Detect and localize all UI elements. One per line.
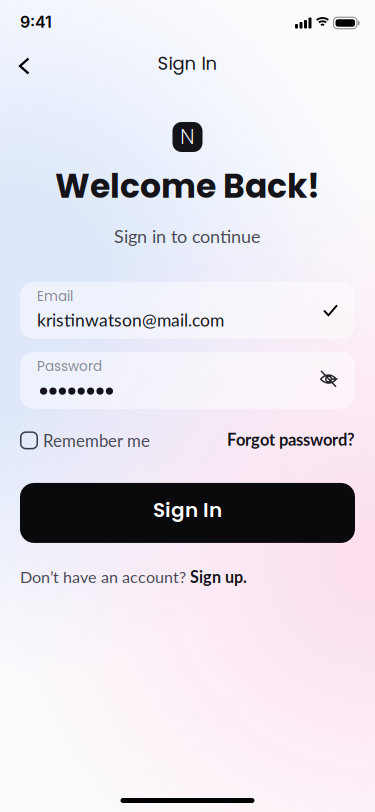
button[interactable]: Show password [320,372,337,388]
staticText: N [180,125,195,149]
staticText: Sign In [153,496,222,524]
button[interactable]: Sign up. [190,567,247,586]
staticText: Email [37,287,73,306]
staticText: Sign In [157,51,217,76]
staticText: Sign up. [190,567,247,586]
button[interactable]: Back [0,45,28,86]
staticText: Welcome Back! [55,163,320,209]
staticText: Don’t have an account? [20,567,190,586]
staticText: Password [37,357,102,376]
staticText: Remember me [43,430,150,450]
staticText: Forgot password? [227,429,355,449]
button[interactable]: Forgot password? [227,430,355,450]
button[interactable]: Sign In [20,483,355,543]
button[interactable]: Remember me [20,430,150,450]
staticText: Sign in to continue [114,225,261,247]
staticText: kristinwatson@mail.com [37,309,224,330]
staticText: 9:41 [20,12,52,32]
